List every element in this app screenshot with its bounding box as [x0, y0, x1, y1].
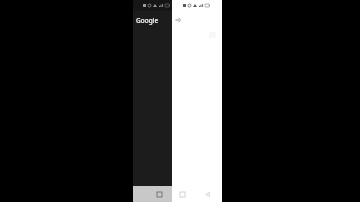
- button[interactable]: Back: [200, 187, 214, 201]
- button[interactable]: Google Account: [133, 11, 172, 29]
- button[interactable]: Home: [175, 187, 189, 201]
- button[interactable]: Recent apps: [153, 188, 165, 200]
- other: Loading: [173, 15, 183, 25]
- staticText: Google Account: [136, 16, 172, 25]
